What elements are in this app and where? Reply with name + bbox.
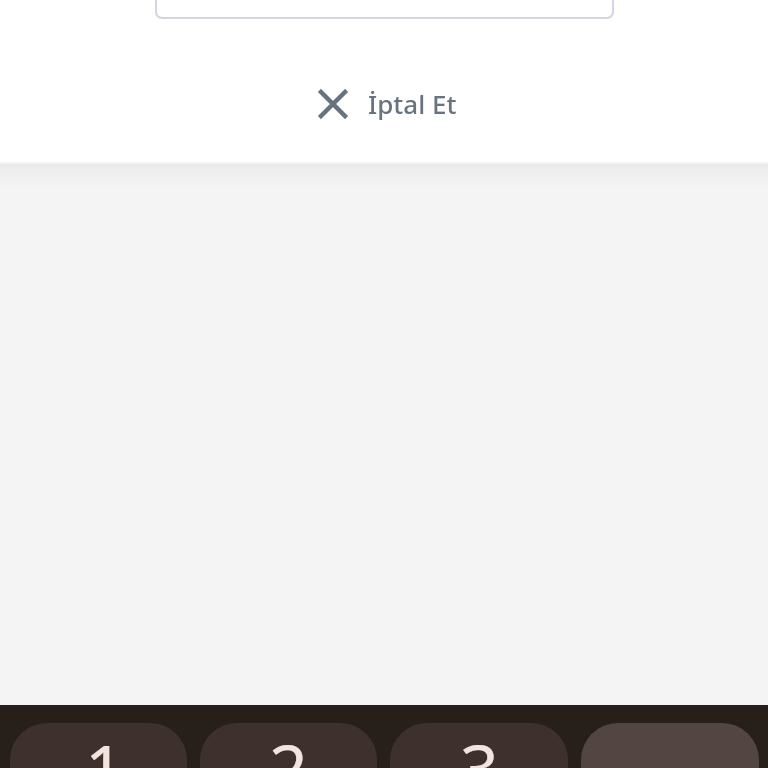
staticText: 2	[269, 723, 308, 768]
button[interactable]: Kart numarası	[155, 0, 614, 19]
button[interactable]: 3	[390, 723, 568, 768]
button[interactable]: 1	[10, 723, 187, 768]
button[interactable]: İptal Et	[307, 80, 467, 127]
staticText: 1	[85, 723, 124, 768]
button[interactable]: 2	[200, 723, 377, 768]
staticText: İptal Et	[368, 86, 457, 121]
staticText: 3	[460, 723, 499, 768]
button[interactable]: Sil	[581, 723, 759, 768]
